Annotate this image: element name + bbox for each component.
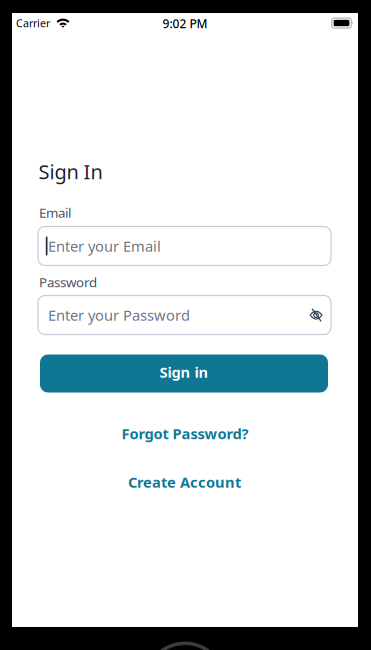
button[interactable]: Forgot Password? bbox=[121, 424, 248, 443]
button[interactable]: Create Account bbox=[128, 472, 241, 492]
staticText: Carrier bbox=[16, 16, 50, 30]
staticText: Sign in bbox=[159, 362, 208, 382]
button[interactable]: Sign in bbox=[40, 354, 328, 392]
staticText: Password bbox=[39, 273, 97, 291]
staticText: Create Account bbox=[128, 472, 241, 492]
staticText: Forgot Password? bbox=[121, 424, 248, 443]
staticText: Enter your Email bbox=[48, 236, 161, 256]
staticText: 9:02 PM bbox=[162, 15, 207, 31]
staticText: Sign In bbox=[38, 158, 102, 185]
staticText: Enter your Password bbox=[48, 305, 190, 325]
button[interactable]: Show password bbox=[309, 308, 322, 321]
staticText: Email bbox=[39, 204, 71, 221]
